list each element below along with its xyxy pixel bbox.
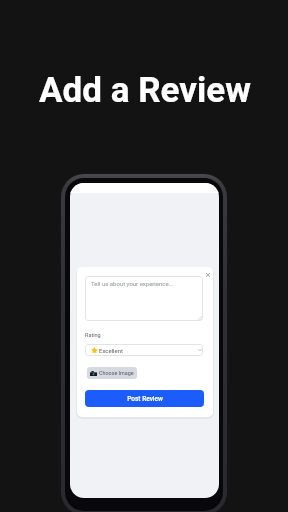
staticText: Tell us about your experience...	[91, 280, 174, 287]
button[interactable]: Choose Image	[87, 367, 137, 379]
staticText: Post Review	[127, 395, 163, 403]
button[interactable]: Post Review	[85, 390, 204, 407]
button[interactable]: Tell us about your experience...	[85, 276, 203, 321]
button[interactable]: Close	[203, 270, 212, 279]
staticText: Rating	[85, 332, 101, 338]
staticText: Add a Review	[39, 70, 251, 111]
staticText: Choose Image	[99, 370, 134, 376]
button[interactable]: Excellent	[85, 344, 203, 356]
staticText: Excellent	[99, 347, 124, 354]
